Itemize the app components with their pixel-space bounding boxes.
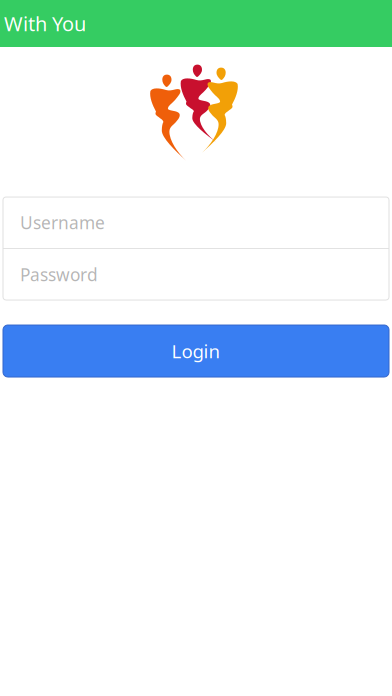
staticText: Password [20, 263, 98, 286]
staticText: Login [171, 339, 220, 363]
staticText: Username [20, 211, 105, 234]
button[interactable]: Login [3, 325, 389, 377]
staticText: With You [4, 10, 86, 37]
